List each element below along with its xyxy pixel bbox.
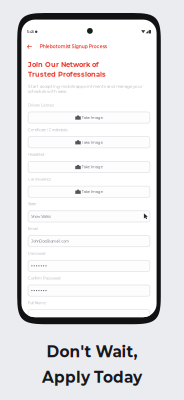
staticText: State <box>28 202 36 206</box>
staticText: Don't Wait, <box>46 342 137 361</box>
button[interactable]: Take Image <box>28 137 150 148</box>
staticText: Full Name <box>28 301 46 305</box>
button[interactable]: Take Image <box>28 161 150 173</box>
staticText: Email <box>28 226 38 231</box>
staticText: Join Our Network of <box>28 61 99 69</box>
button[interactable]: Show States <box>28 211 150 222</box>
staticText: Trusted Professionals <box>28 70 106 78</box>
staticText: Take Image <box>81 140 103 145</box>
staticText: Apply Today <box>42 368 142 387</box>
staticText: Start accepting mobile appointments and … <box>28 84 143 94</box>
staticText: Password <box>28 251 45 256</box>
button[interactable]: Take Image <box>28 112 150 123</box>
button[interactable] <box>28 260 150 271</box>
staticText: Headshot <box>28 152 44 157</box>
staticText: 5:46 <box>27 29 34 34</box>
staticText: Take Image <box>81 189 103 194</box>
staticText: Car Insurance <box>28 177 51 181</box>
staticText: Confirm Password <box>28 276 60 280</box>
staticText: Take Image <box>81 115 103 120</box>
staticText: JohnDoe@gmail.com <box>31 239 69 243</box>
button[interactable]: Take Image <box>28 186 150 197</box>
staticText: Take Image <box>81 165 103 169</box>
staticText: Drivers License <box>28 103 54 107</box>
button[interactable] <box>28 310 150 321</box>
button[interactable]: JohnDoe@gmail.com <box>28 235 150 247</box>
staticText: Certificate / Credentials <box>28 128 68 132</box>
staticText: Show States <box>31 214 51 218</box>
staticText: Phlebotomist Signup Process <box>40 44 107 49</box>
button[interactable] <box>28 285 150 296</box>
button[interactable]: Back <box>27 44 32 49</box>
